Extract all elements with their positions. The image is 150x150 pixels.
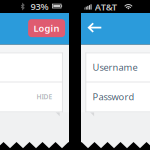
staticText: HIDE (36, 92, 52, 101)
staticText: AT&T (95, 1, 117, 13)
staticText: Password (92, 90, 134, 103)
button[interactable]: Login (0, 0, 37, 18)
button[interactable]: HIDE (0, 0, 20, 30)
staticText: Login (34, 22, 60, 34)
staticText: 93% (30, 0, 48, 12)
button[interactable]: Back (0, 0, 150, 150)
staticText: Username (92, 61, 137, 73)
button[interactable]: Password (0, 0, 56, 30)
button[interactable]: Username (0, 0, 56, 29)
